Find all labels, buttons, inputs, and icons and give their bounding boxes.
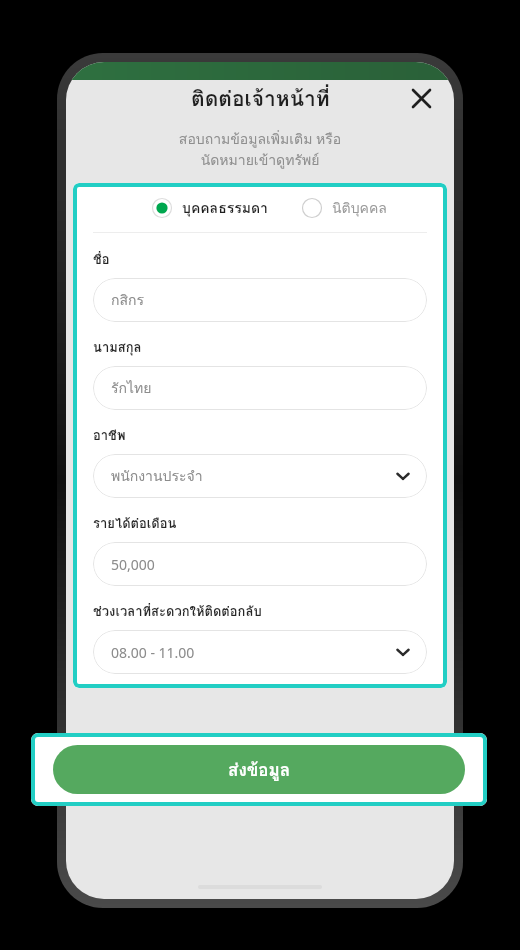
staticText: พนักงานประจำ: [111, 465, 395, 487]
staticText: ติดต่อเจ้าหน้าที่: [191, 82, 330, 115]
staticText: 08.00 - 11.00: [111, 643, 395, 662]
button[interactable]: นิติบุคคล: [298, 193, 391, 223]
button[interactable]: ส่งข้อมูล: [53, 745, 465, 794]
staticText: นิติบุคคล: [332, 197, 387, 219]
button[interactable]: 08.00 - 11.00: [93, 630, 427, 674]
button[interactable]: ย้อนกลับ: [88, 778, 183, 814]
button[interactable]: รักไทย: [93, 366, 427, 410]
staticText: ชื่อ: [93, 249, 110, 270]
staticText: นามสกุล: [93, 337, 142, 358]
staticText: ช่วงเวลาที่สะดวกให้ติดต่อกลับ: [93, 601, 262, 622]
button[interactable]: 50,000: [93, 542, 427, 586]
staticText: ส่งข้อมูล: [228, 756, 291, 783]
staticText: กสิกร: [111, 289, 411, 311]
staticText: 50,000: [111, 555, 411, 574]
button[interactable]: พนักงานประจำ: [93, 454, 427, 498]
staticText: ย้อนกลับ: [121, 784, 177, 808]
staticText: รักไทย: [111, 377, 411, 399]
staticText: รายได้ต่อเดือน: [93, 513, 177, 534]
staticText: อาชีพ: [93, 425, 126, 446]
button[interactable]: บุคคลธรรมดา: [148, 193, 272, 223]
staticText: บุคคลธรรมดา: [182, 197, 268, 219]
staticText: สอบถามข้อมูลเพิ่มเติม หรือ นัดหมายเข้าดู…: [90, 128, 430, 171]
button[interactable]: กสิกร: [93, 278, 427, 322]
button[interactable]: Close: [406, 83, 436, 113]
